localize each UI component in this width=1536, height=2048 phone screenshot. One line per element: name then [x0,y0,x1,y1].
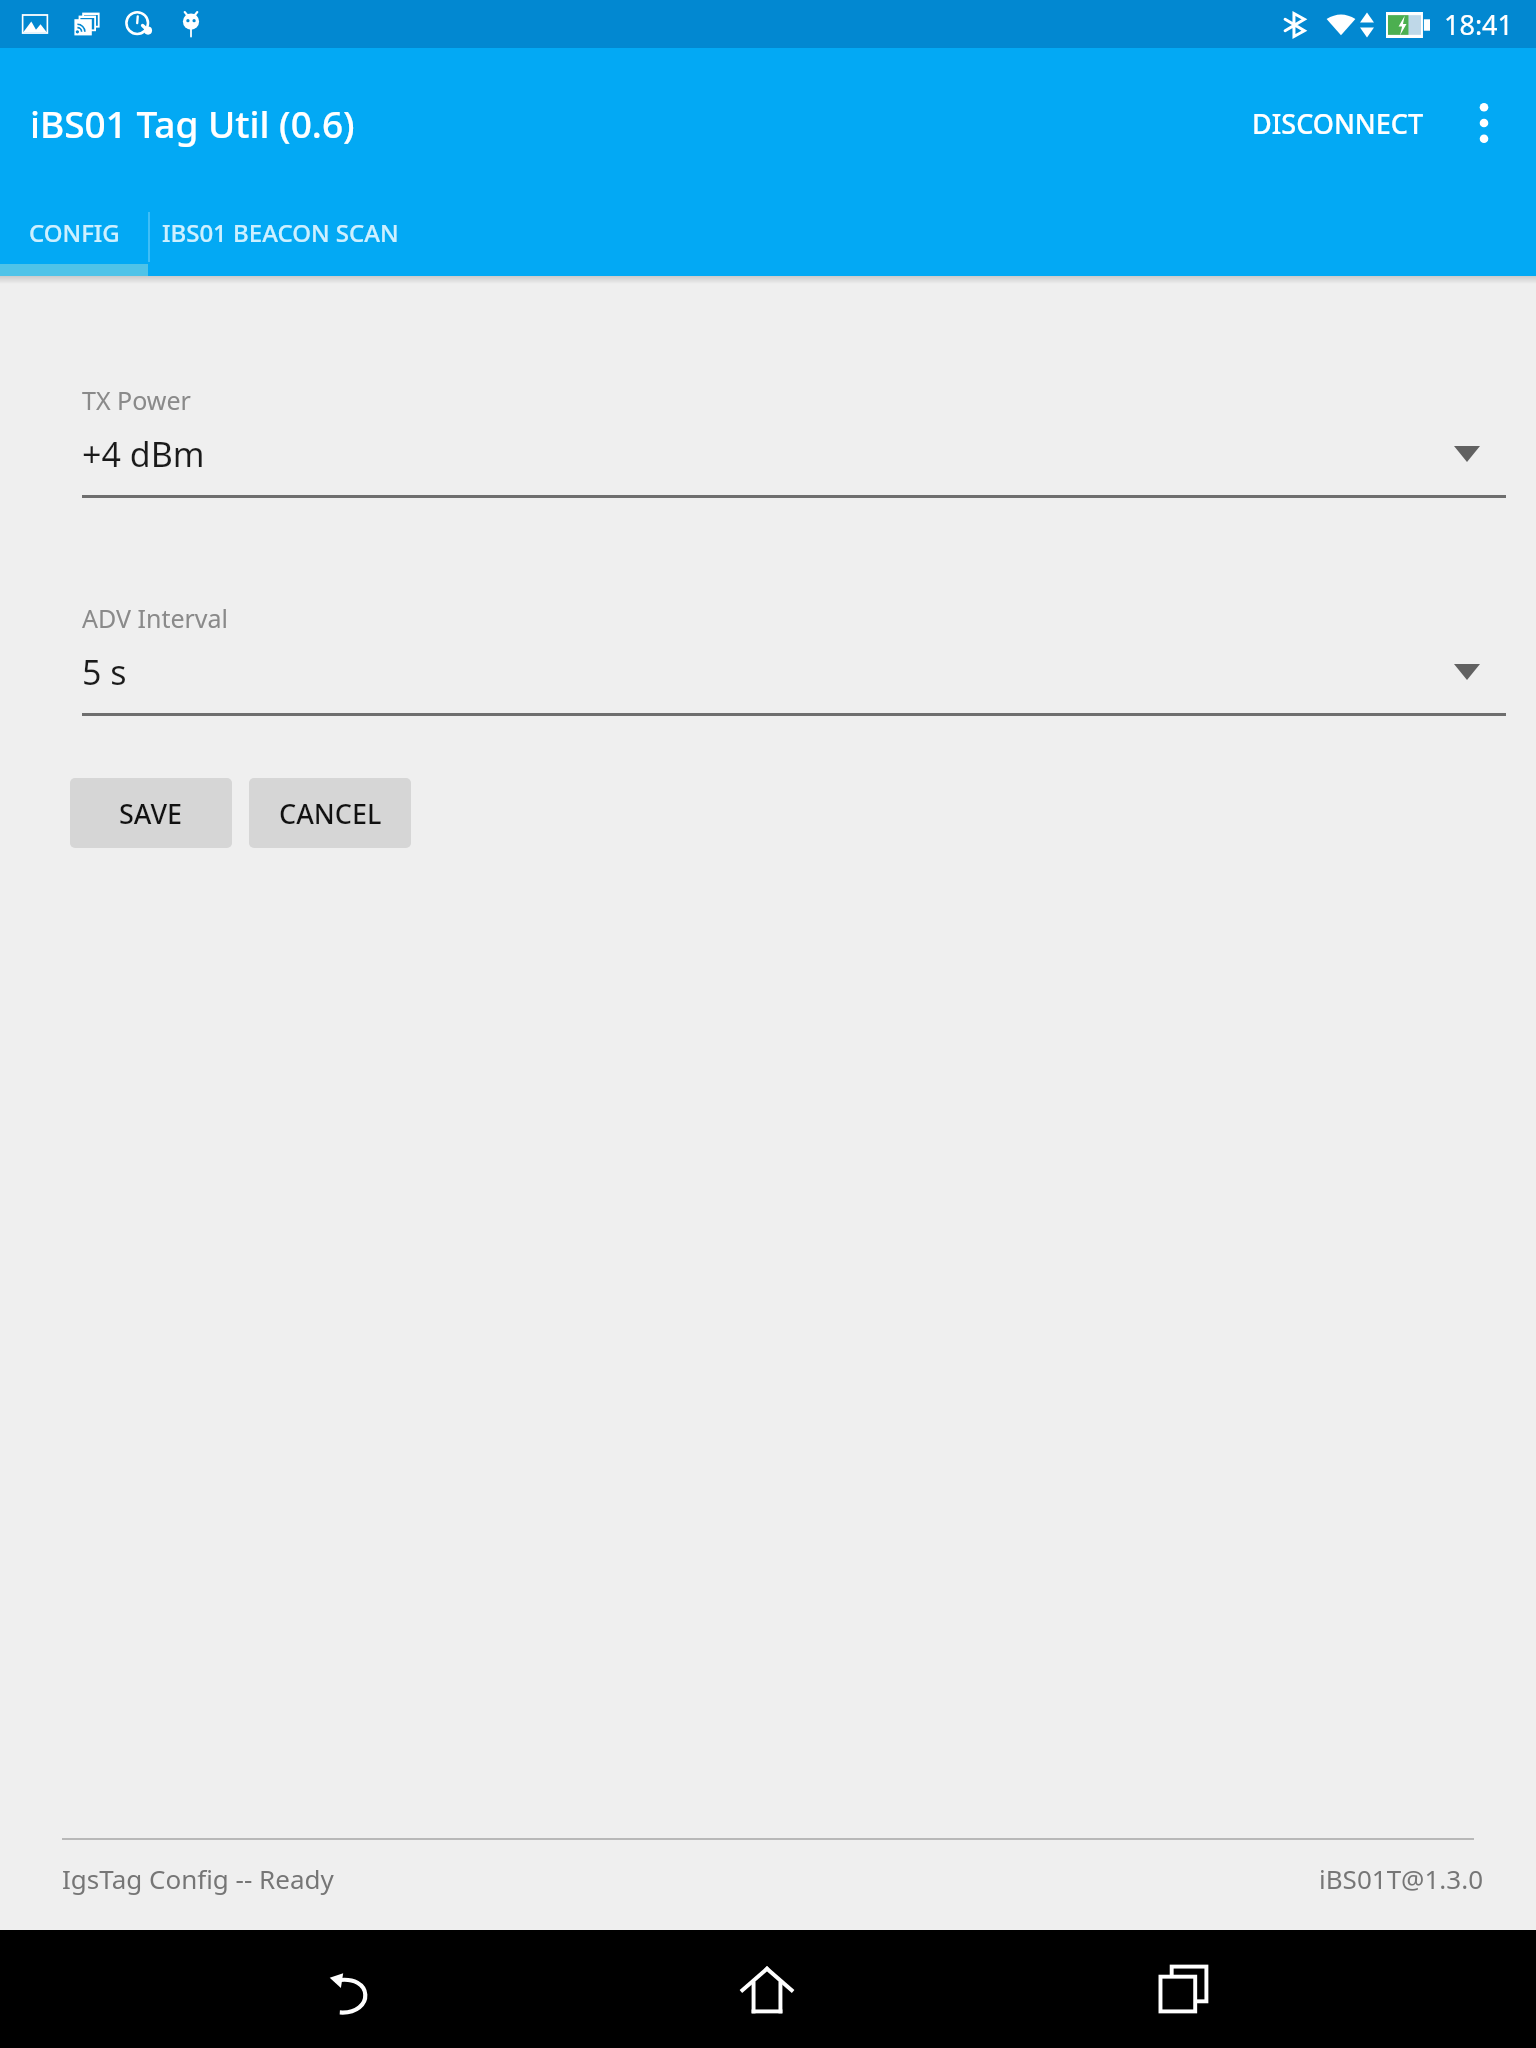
button[interactable]: SAVE [70,778,232,848]
staticText: iBS01T@1.3.0 [1319,1861,1484,1896]
staticText: iBS01 Tag Util (0.6) [30,98,355,148]
button[interactable]: More options [1446,68,1522,178]
staticText: CONFIG [29,216,120,249]
staticText: DISCONNECT [1252,105,1424,142]
staticText: 5 s [82,649,127,695]
button[interactable]: Home [702,1930,832,2048]
button[interactable]: CONFIG [0,198,148,276]
staticText: IBS01 BEACON SCAN [162,216,399,249]
button[interactable]: TX Power [82,383,1506,498]
button[interactable]: IBS01 BEACON SCAN [150,198,410,276]
staticText: 18:41 [1444,6,1514,43]
button[interactable]: DISCONNECT [1230,79,1446,168]
staticText: TX Power [82,383,191,417]
button[interactable]: ADV Interval [82,601,1506,716]
staticText: IgsTag Config -- Ready [62,1861,334,1896]
staticText: CANCEL [279,795,382,832]
staticText: +4 dBm [82,431,205,477]
staticText: SAVE [119,795,183,832]
button[interactable]: Back [286,1930,416,2048]
button[interactable]: Recent apps [1119,1930,1249,2048]
staticText: ADV Interval [82,601,229,635]
button[interactable]: CANCEL [249,778,411,848]
